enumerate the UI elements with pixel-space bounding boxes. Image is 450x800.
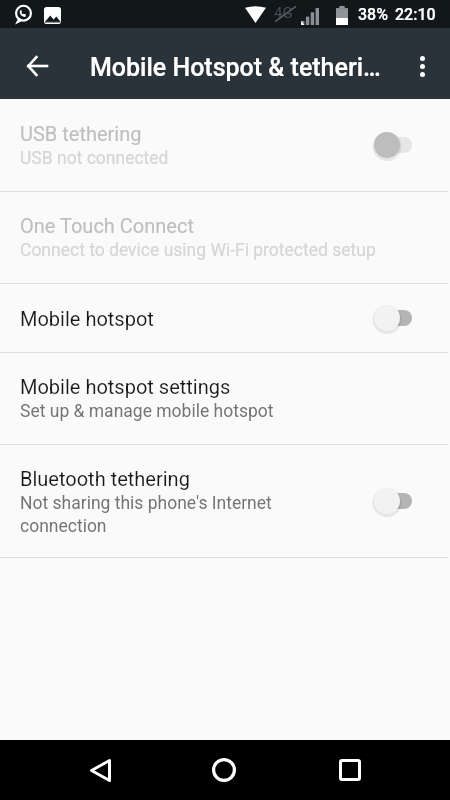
button[interactable]: Recents xyxy=(325,745,375,795)
staticText: 22:10 xyxy=(395,5,436,24)
staticText: USB not connected xyxy=(20,148,169,169)
button[interactable]: Back xyxy=(4,32,70,99)
button[interactable]: Mobile hotspot xyxy=(0,284,450,352)
staticText: Connect to device using Wi-Fi protected … xyxy=(20,240,376,261)
staticText: Not sharing this phone's Internet connec… xyxy=(20,493,285,536)
button[interactable]: Bluetooth tethering xyxy=(0,445,450,557)
staticText: Mobile Hotspot & tethering xyxy=(90,53,386,82)
staticText: Mobile hotspot settings xyxy=(20,375,231,398)
button[interactable]: USB tethering xyxy=(0,99,450,191)
button[interactable]: Back xyxy=(75,745,125,795)
button[interactable]: Toggle xyxy=(372,125,420,165)
staticText: USB tethering xyxy=(20,122,142,145)
button[interactable]: One Touch Connect xyxy=(0,192,450,283)
staticText: 4G xyxy=(274,4,293,22)
button[interactable]: Toggle xyxy=(372,298,420,338)
button[interactable]: More options xyxy=(400,43,444,89)
staticText: 38% xyxy=(358,5,388,24)
staticText: Bluetooth tethering xyxy=(20,467,190,490)
button[interactable]: Mobile hotspot settings xyxy=(0,353,450,444)
staticText: Set up & manage mobile hotspot xyxy=(20,401,274,422)
button[interactable]: Toggle xyxy=(372,481,420,521)
staticText: Mobile hotspot xyxy=(20,307,154,330)
button[interactable]: Home xyxy=(199,745,249,795)
staticText: One Touch Connect xyxy=(20,214,194,237)
